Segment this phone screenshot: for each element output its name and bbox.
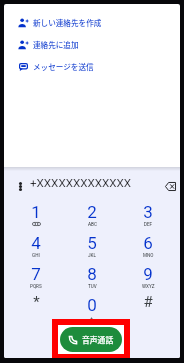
staticText: MNO [143,253,154,258]
staticText: TUV [88,284,97,289]
staticText: DEF [144,222,153,227]
button[interactable]: 音声通話 [60,327,122,352]
staticText: JKL [88,253,96,258]
staticText: PQRS [30,284,42,289]
button[interactable]: 8 [64,258,120,289]
staticText: 8 [87,264,97,284]
staticText: GHI [32,253,40,258]
staticText: WXYZ [142,284,155,289]
button[interactable]: Backspace [159,175,180,197]
staticText: 0 [87,295,97,315]
staticText: 4 [31,233,41,253]
button[interactable]: 2 [64,196,120,227]
staticText: + [90,315,94,320]
button[interactable]: 7 [8,258,64,289]
button[interactable]: 4 [8,227,64,258]
staticText: 5 [87,233,97,253]
staticText: 9 [143,264,153,284]
staticText: ABC [88,222,97,227]
button[interactable]: 新しい連絡先を作成 [4,11,180,33]
button[interactable]: 0 [64,289,120,320]
staticText: 7 [31,264,41,284]
button[interactable]: 連絡先に追加 [4,33,180,55]
button[interactable]: # [120,289,176,320]
staticText: 6 [143,233,153,253]
staticText: 連絡先に追加 [33,39,79,50]
button[interactable]: * [8,289,64,320]
staticText: 音声通話 [82,334,114,345]
staticText: 新しい連絡先を作成 [33,17,102,28]
button[interactable]: メッセージを送信 [4,55,180,77]
staticText: 1 [31,202,41,222]
staticText: 3 [143,202,153,222]
button[interactable]: 1 [8,196,64,227]
staticText: # [143,293,153,311]
button[interactable]: 5 [64,227,120,258]
staticText: メッセージを送信 [33,61,94,72]
staticText: 2 [87,202,97,222]
button[interactable]: 6 [120,227,176,258]
staticText: +XXXXXXXXXXXXX [30,176,132,190]
button[interactable]: 9 [120,258,176,289]
button[interactable]: 3 [120,196,176,227]
button[interactable]: More options [11,177,29,195]
staticText: * [33,293,40,311]
